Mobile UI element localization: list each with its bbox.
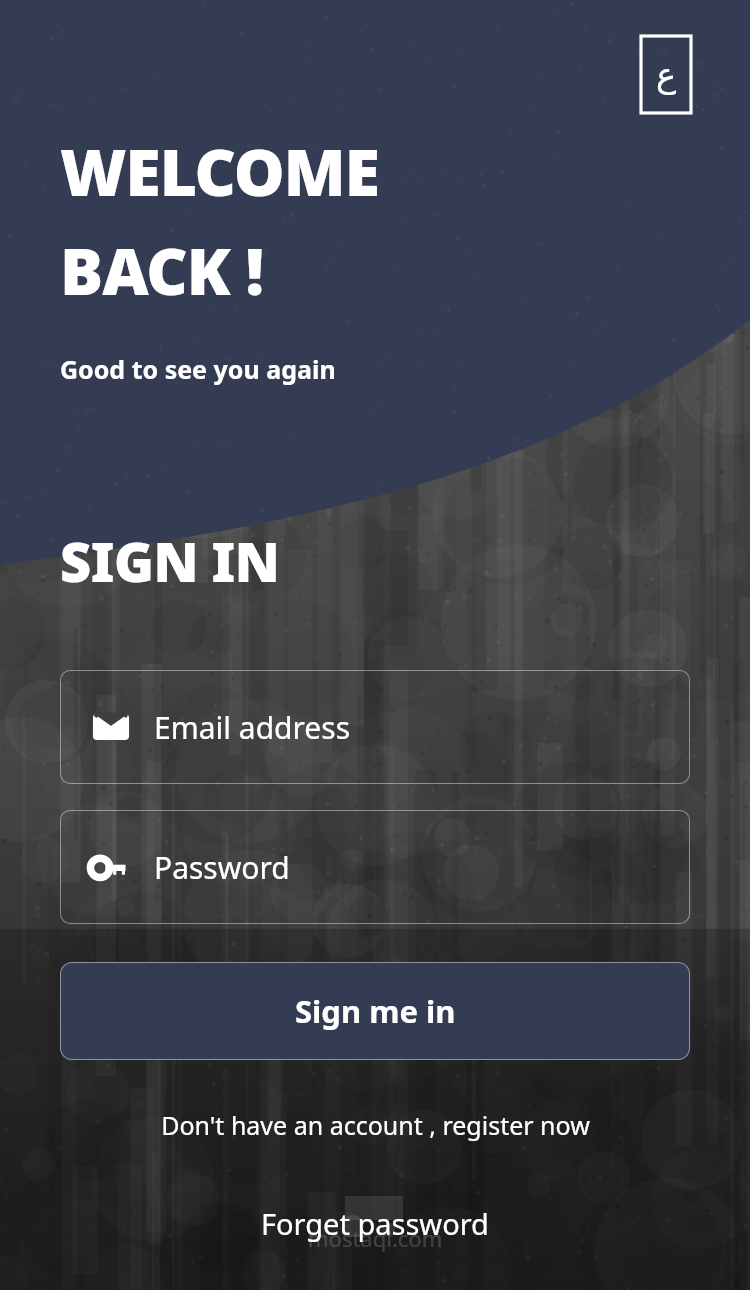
button[interactable]: Password bbox=[60, 810, 690, 924]
button[interactable]: Forget password bbox=[261, 1204, 489, 1243]
button[interactable]: Don't have an account , register now bbox=[0, 1108, 750, 1142]
button[interactable]: App logo bbox=[641, 36, 691, 113]
staticText: mostaql.com bbox=[308, 1223, 443, 1253]
staticText: Good to see you again bbox=[60, 352, 336, 386]
button[interactable]: Sign me in bbox=[60, 962, 690, 1060]
staticText: BACK ! bbox=[60, 227, 264, 314]
staticText: SIGN IN bbox=[60, 524, 280, 598]
button[interactable]: Email address bbox=[60, 670, 690, 784]
staticText: Don't have an account , register now bbox=[161, 1108, 590, 1142]
staticText: Forget password bbox=[261, 1204, 489, 1243]
staticText: Sign me in bbox=[295, 990, 456, 1032]
staticText: Password bbox=[154, 847, 290, 888]
staticText: WELCOME bbox=[60, 128, 379, 215]
staticText: ع bbox=[656, 55, 677, 95]
staticText: Email address bbox=[154, 707, 351, 748]
